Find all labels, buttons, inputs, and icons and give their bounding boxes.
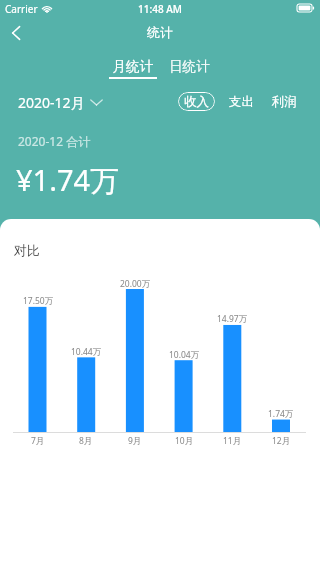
staticText: 利润: [272, 94, 297, 110]
button[interactable]: 利润: [271, 92, 297, 111]
staticText: 对比: [14, 242, 40, 258]
staticText: 日统计: [165, 58, 214, 75]
staticText: 14.97万: [217, 313, 248, 325]
staticText: 统计: [0, 24, 320, 40]
button[interactable]: 日统计: [165, 58, 214, 81]
staticText: Carrier: [5, 2, 38, 16]
staticText: 10.44万: [71, 346, 102, 358]
staticText: 8月: [79, 435, 93, 447]
staticText: 2020-12 合计: [18, 133, 91, 149]
button[interactable]: 支出: [228, 92, 254, 111]
staticText: 17.50万: [23, 295, 54, 307]
staticText: 支出: [229, 94, 254, 110]
staticText: 7月: [31, 435, 45, 447]
staticText: 2020-12月: [18, 93, 85, 112]
staticText: 收入: [184, 94, 209, 110]
staticText: 9月: [128, 435, 142, 447]
button[interactable]: 收入: [178, 92, 215, 111]
button[interactable]: 月统计: [107, 58, 159, 81]
staticText: 11:48 AM: [138, 2, 182, 16]
staticText: ¥1.74万: [16, 160, 120, 200]
staticText: 1.74万: [268, 408, 294, 420]
staticText: 10月: [175, 435, 194, 447]
staticText: 10.04万: [169, 349, 200, 361]
staticText: 20.00万: [120, 278, 151, 290]
button[interactable]: 2020-12月: [14, 90, 107, 115]
staticText: 月统计: [107, 58, 159, 75]
button[interactable]: Back: [0, 17, 32, 49]
staticText: 12月: [272, 435, 291, 447]
staticText: 11月: [223, 435, 242, 447]
